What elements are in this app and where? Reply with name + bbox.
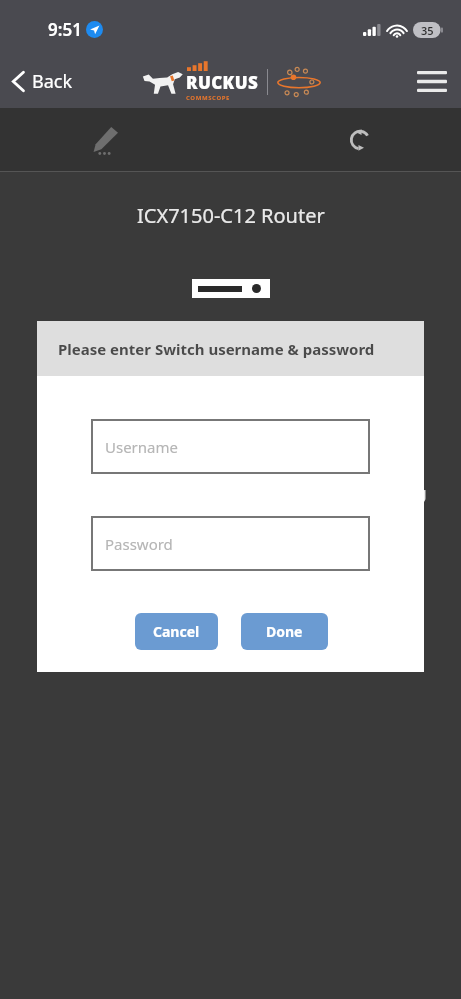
staticText: Last seen: (65, 416, 136, 436)
button[interactable]: Menu (403, 59, 461, 104)
staticText: COMMSCOPE (186, 94, 231, 102)
staticText: 0 Blocked by Admin (240, 534, 379, 554)
staticText: 0 Available (240, 508, 316, 528)
staticText: Please enter Switch username & password (58, 339, 375, 359)
button[interactable]: Refresh (337, 117, 383, 163)
staticText: N/A (240, 416, 267, 436)
staticText: 0 mWatts Available (240, 626, 374, 646)
staticText: 0 Connected with Warning (240, 482, 427, 502)
button[interactable]: Back (0, 61, 85, 102)
staticText: RUCKUS (186, 71, 259, 94)
staticText: Username (105, 437, 178, 457)
button[interactable]: Cancel (135, 613, 218, 650)
staticText: Ports: (65, 456, 106, 476)
staticText: Done (266, 622, 303, 641)
staticText: Back (32, 69, 73, 94)
staticText: 0 Connected (240, 456, 329, 476)
button[interactable]: Username (92, 420, 369, 473)
button[interactable]: Done (241, 613, 328, 650)
button[interactable]: Edit (82, 117, 128, 163)
staticText: 0 mWatts Used (240, 600, 347, 620)
staticText: 9:51 (48, 18, 82, 41)
staticText: Cancel (153, 622, 200, 641)
staticText: ICX7150-C12 Router (137, 202, 325, 229)
staticText: Password (105, 534, 173, 554)
button[interactable]: Password (92, 517, 369, 570)
staticText: 35 (421, 23, 434, 38)
